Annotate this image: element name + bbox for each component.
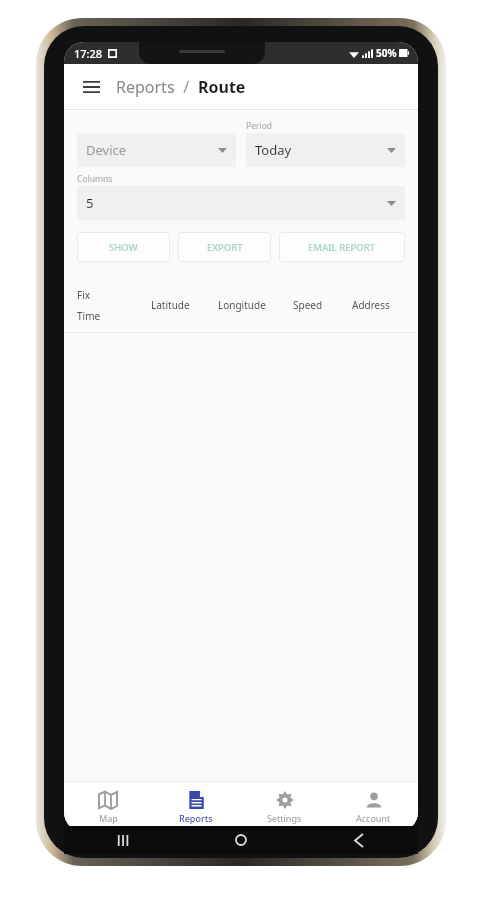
staticText: Account [356,812,391,824]
staticText: Settings [267,812,302,824]
staticText: Address [352,298,390,312]
button[interactable]: EMAIL REPORT [279,232,405,262]
staticText: Period [246,120,273,132]
button[interactable]: 5 [77,186,405,220]
staticText: 5 [86,194,94,212]
staticText: / [175,76,198,98]
staticText: 17:28 [74,46,103,61]
staticText: Columns [77,173,113,185]
staticText: Latitude [151,298,190,312]
staticText: Today [255,141,292,159]
button[interactable]: EXPORT [178,232,271,262]
button[interactable]: Settings [240,782,329,832]
staticText: Speed [293,298,323,312]
button[interactable]: Map [64,782,152,832]
button[interactable]: Back [300,826,418,854]
staticText: Route [198,76,246,98]
button[interactable]: Reports [152,782,240,832]
button[interactable]: SHOW [77,232,170,262]
staticText: Reports [116,76,175,98]
staticText: Longitude [218,298,266,312]
staticText: 50% [376,46,397,60]
button[interactable]: Device [77,133,236,167]
staticText: Map [99,812,118,824]
staticText: EMAIL REPORT [308,241,376,254]
staticText: Device [86,141,127,159]
staticText: SHOW [109,241,138,254]
button[interactable]: Today [246,133,405,167]
staticText: Fix [77,288,91,302]
button[interactable]: Recent apps [64,826,182,854]
button[interactable]: Home [182,826,300,854]
staticText: Time [77,309,101,323]
button[interactable]: Open navigation menu [78,74,104,100]
button[interactable]: Account [329,782,418,832]
staticText: Reports [179,812,213,824]
staticText: EXPORT [207,241,243,254]
